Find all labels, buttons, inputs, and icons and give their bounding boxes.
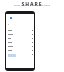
button[interactable] — [6, 44, 34, 48]
button[interactable]: App — [10, 17, 12, 19]
button[interactable] — [6, 52, 34, 56]
staticText: SHARE — [0, 1, 64, 8]
button[interactable] — [6, 36, 34, 40]
staticText: Email, Airdrop, Whatsapp & more — [0, 4, 64, 7]
button[interactable] — [6, 48, 34, 52]
button[interactable] — [6, 28, 34, 32]
button[interactable] — [6, 40, 34, 44]
button[interactable] — [6, 32, 34, 36]
